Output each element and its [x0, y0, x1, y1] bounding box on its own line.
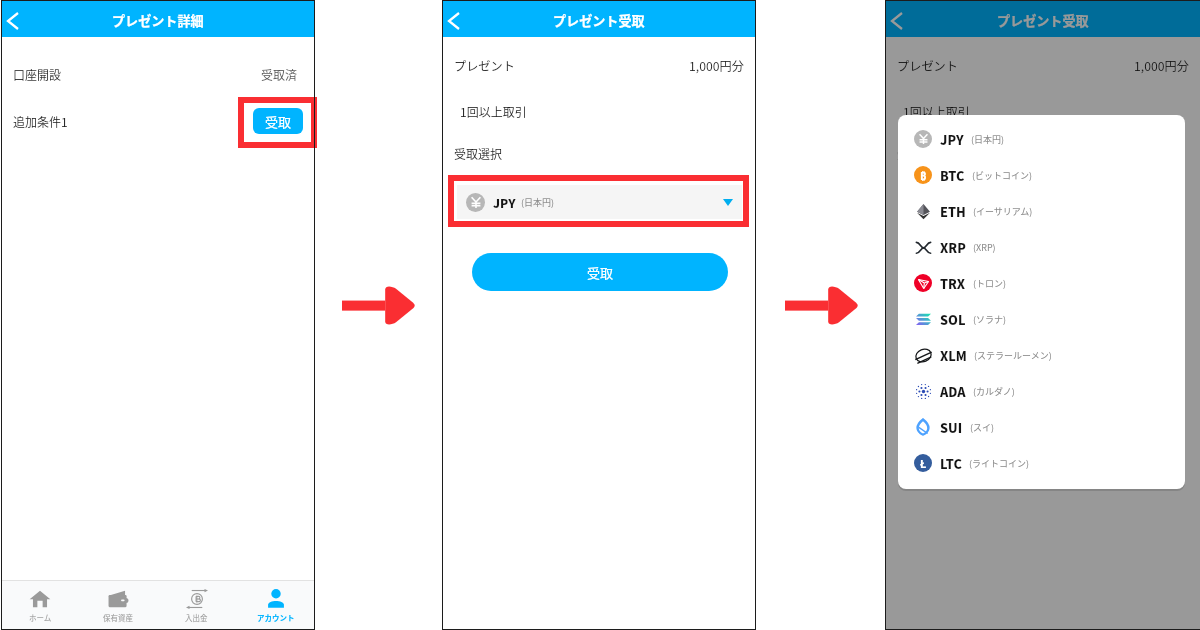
staticText: (スイ): [970, 421, 995, 434]
button[interactable]: XLM: [898, 337, 1185, 373]
staticText: (ビットコイン): [972, 169, 1033, 182]
staticText: アカウント: [257, 612, 295, 623]
button[interactable]: Back: [0, 2, 27, 39]
staticText: SOL: [940, 310, 966, 328]
button[interactable]: SUI: [898, 409, 1185, 445]
staticText: TRX: [940, 274, 966, 292]
button[interactable]: TRX: [898, 265, 1185, 301]
staticText: JPY: [940, 130, 964, 148]
staticText: (カルダノ): [973, 385, 1015, 398]
staticText: (ステラールーメン): [974, 349, 1052, 362]
staticText: プレゼント詳細: [112, 11, 204, 30]
button[interactable]: ADA: [898, 373, 1185, 409]
staticText: XRP: [940, 238, 966, 256]
staticText: SUI: [940, 418, 963, 436]
staticText: 受取: [265, 112, 292, 131]
staticText: 1,000円分: [689, 57, 744, 75]
staticText: Ł: [920, 456, 927, 471]
staticText: プレゼント: [454, 57, 515, 75]
button[interactable]: 入出金: [157, 581, 236, 630]
staticText: 受取済: [261, 66, 298, 83]
button[interactable]: Ł: [898, 445, 1185, 481]
staticText: (イーサリアム): [973, 205, 1033, 218]
staticText: LTC: [940, 454, 962, 472]
button[interactable]: 受取: [915, 253, 1171, 291]
button[interactable]: Back: [440, 2, 468, 39]
button[interactable]: ETH: [898, 193, 1185, 229]
staticText: 受取: [587, 263, 614, 282]
staticText: 入出金: [185, 612, 208, 623]
button[interactable]: Back: [883, 2, 911, 39]
staticText: 追加条件1: [13, 113, 68, 130]
button[interactable]: 口座開設: [1, 61, 315, 88]
staticText: プレゼント: [897, 57, 958, 75]
staticText: (日本円): [964, 196, 998, 209]
button[interactable]: SOL: [898, 301, 1185, 337]
staticText: (ライトコイン): [969, 457, 1030, 470]
staticText: ホーム: [29, 612, 52, 623]
button[interactable]: ₿: [898, 157, 1185, 193]
button[interactable]: 保有資産: [79, 581, 157, 630]
staticText: ETH: [940, 202, 966, 220]
staticText: 受取選択: [454, 145, 503, 162]
button[interactable]: JPY: [898, 121, 1185, 157]
button[interactable]: XRP: [898, 229, 1185, 265]
staticText: 口座開設: [13, 66, 62, 83]
staticText: プレゼント受取: [553, 11, 645, 30]
staticText: 1,000円分: [1134, 57, 1189, 75]
staticText: ₿: [920, 168, 927, 183]
staticText: 受取選択: [897, 145, 946, 162]
staticText: ADA: [940, 382, 966, 400]
staticText: (トロン): [973, 277, 1007, 290]
staticText: プレゼント受取: [997, 11, 1089, 30]
staticText: JPY: [493, 194, 516, 211]
button[interactable]: JPY: [457, 185, 742, 219]
button[interactable]: 受取: [472, 253, 728, 291]
staticText: 1回以上取引: [903, 103, 970, 120]
staticText: BTC: [940, 166, 965, 184]
button[interactable]: アカウント: [236, 581, 315, 630]
staticText: (日本円): [521, 196, 555, 209]
staticText: XLM: [940, 346, 967, 364]
button[interactable]: JPY: [900, 185, 1185, 219]
staticText: (ソラナ): [973, 313, 1007, 326]
button[interactable]: ホーム: [1, 581, 79, 630]
staticText: JPY: [936, 194, 959, 211]
staticText: (日本円): [971, 133, 1005, 146]
button[interactable]: 受取: [253, 108, 303, 134]
staticText: 保有資産: [103, 612, 133, 623]
staticText: (XRP): [973, 241, 996, 254]
staticText: 1回以上取引: [460, 103, 527, 120]
